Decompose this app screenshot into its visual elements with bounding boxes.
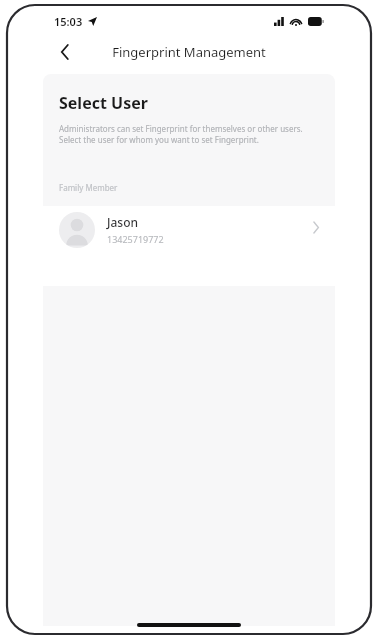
- staticText: 15:03: [54, 14, 83, 29]
- button[interactable]: Jason: [43, 206, 335, 282]
- staticText: Jason: [107, 214, 139, 230]
- staticText: Select User: [59, 92, 148, 114]
- staticText: Fingerprint Management: [112, 43, 266, 61]
- staticText: Family Member: [59, 182, 118, 193]
- staticText: Administrators can set Fingerprint for t…: [59, 123, 319, 146]
- staticText: 13425719772: [107, 233, 164, 245]
- button[interactable]: Back: [54, 41, 76, 63]
